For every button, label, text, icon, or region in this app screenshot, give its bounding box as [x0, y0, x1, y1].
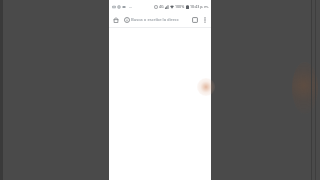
button[interactable]: Inicio [111, 15, 121, 25]
staticText: 100% [175, 4, 185, 9]
button[interactable]: Cambiar de pestaña [190, 15, 200, 25]
staticText: 4G [159, 4, 164, 9]
staticText: Busca o escribe la direcc [131, 17, 179, 23]
staticText: 10:43 p. m. [190, 4, 209, 9]
staticText: … [129, 4, 133, 9]
button[interactable]: Más opciones [200, 15, 209, 24]
button[interactable]: Busca o escribe la direcc [122, 14, 189, 25]
